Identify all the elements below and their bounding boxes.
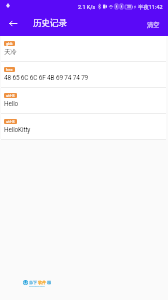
staticText: 清空: [147, 21, 160, 29]
staticText: gbk: [6, 41, 13, 46]
button[interactable]: utf-8: [1, 88, 166, 114]
staticText: utf-8: [6, 119, 15, 124]
button[interactable]: gbk: [1, 36, 166, 62]
staticText: 软件: [38, 280, 47, 285]
staticText: 当下: [29, 280, 38, 285]
staticText: 半夜11:42: [138, 3, 163, 10]
staticText: Hello: [4, 100, 19, 108]
staticText: 天冷: [4, 48, 17, 56]
staticText: utf-8: [6, 93, 15, 98]
staticText: hex: [6, 67, 13, 72]
button[interactable]: hex: [1, 62, 166, 88]
staticText: DOWNXIA.COM: [29, 285, 45, 288]
staticText: 园: [47, 280, 52, 285]
staticText: 48 65 6C 6C 6F 4B 69 74 74 79: [4, 74, 89, 82]
staticText: HelloKitty: [4, 126, 31, 134]
button[interactable]: Back: [0, 11, 25, 36]
button[interactable]: 清空: [140, 15, 168, 33]
staticText: 38: [127, 5, 132, 9]
button[interactable]: utf-8: [1, 114, 166, 140]
staticText: 2.1 K/s: [78, 4, 96, 10]
staticText: 历史记录: [33, 18, 67, 29]
